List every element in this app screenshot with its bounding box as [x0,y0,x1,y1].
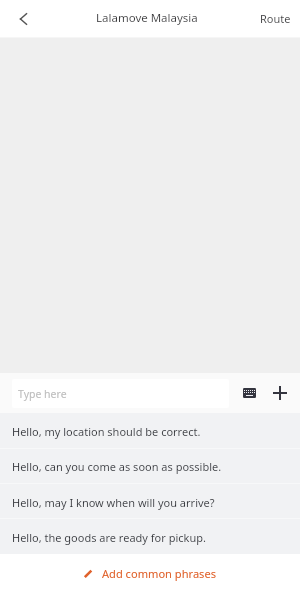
button[interactable]: Type here [12,379,229,408]
staticText: Hello, the goods are ready for pickup. [12,530,206,545]
button[interactable]: Route [249,0,300,38]
button[interactable]: Hello, my location should be correct. [0,413,300,448]
button[interactable]: Back [0,0,46,38]
button[interactable]: Hello, can you come as soon as possible. [0,448,300,483]
button[interactable]: Keyboard [237,379,263,405]
button[interactable]: Hello, the goods are ready for pickup. [0,519,300,554]
button[interactable]: More options [266,379,294,407]
staticText: Hello, my location should be correct. [12,424,201,439]
button[interactable]: Hello, may I know when will you arrive? [0,484,300,519]
staticText: Hello, may I know when will you arrive? [12,495,215,510]
staticText: Add common phrases [102,566,217,581]
staticText: Hello, can you come as soon as possible. [12,459,222,474]
staticText: Route [260,11,291,26]
staticText: Type here [18,387,67,401]
staticText: Lalamove Malaysia [96,10,198,26]
button[interactable]: Add common phrases [76,560,225,587]
